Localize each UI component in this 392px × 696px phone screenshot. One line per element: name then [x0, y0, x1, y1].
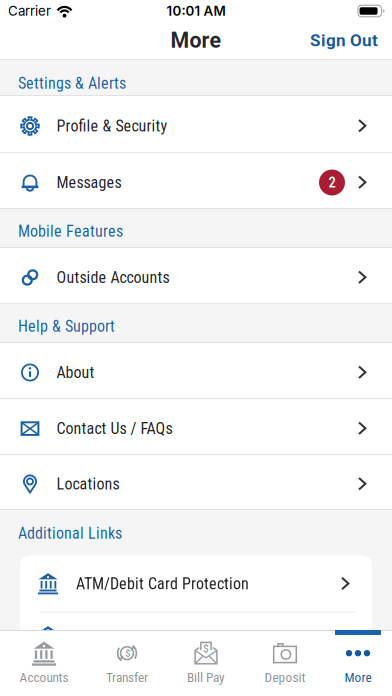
staticText: $	[125, 648, 130, 659]
staticText: Card Controls	[76, 631, 164, 650]
button[interactable]: More	[324, 630, 392, 692]
staticText: ATM/Debit Card Protection	[76, 574, 249, 593]
staticText: Mobile Features	[18, 222, 123, 241]
staticText: Transfer	[106, 670, 148, 685]
button[interactable]: Accounts	[0, 630, 88, 692]
staticText: $	[203, 643, 209, 655]
staticText: About	[56, 363, 94, 382]
button[interactable]: Deposit	[246, 630, 324, 692]
button[interactable]: $	[166, 630, 246, 692]
staticText: Messages	[56, 173, 121, 192]
staticText: Additional Links	[18, 524, 122, 543]
button[interactable]: $	[88, 630, 166, 692]
staticText: Settings & Alerts	[18, 74, 126, 93]
staticText: Accounts	[19, 670, 68, 685]
staticText: 10:01 AM	[166, 3, 225, 19]
staticText: Bill Pay	[187, 670, 225, 685]
button[interactable]: Outside Accounts	[0, 248, 392, 303]
button[interactable]: Sign Out	[310, 30, 392, 50]
button[interactable]: Locations	[0, 455, 392, 509]
staticText: Profile & Security	[56, 117, 167, 135]
button[interactable]: Messages	[0, 153, 392, 208]
staticText: Locations	[56, 475, 119, 493]
staticText: More	[344, 670, 371, 685]
staticText: Carrier	[8, 3, 51, 19]
button[interactable]: Profile & Security	[0, 96, 392, 152]
staticText: More	[170, 28, 221, 53]
button[interactable]: ATM/Debit Card Protection	[20, 556, 372, 612]
button[interactable]: Contact Us / FAQs	[0, 399, 392, 454]
staticText: 2	[328, 174, 335, 191]
button[interactable]: About	[0, 343, 392, 398]
staticText: Help & Support	[18, 317, 115, 336]
staticText: Deposit	[264, 670, 305, 685]
button[interactable]: Card Controls	[20, 613, 372, 669]
staticText: Outside Accounts	[56, 268, 169, 287]
staticText: Sign Out	[310, 30, 378, 50]
staticText: Contact Us / FAQs	[56, 419, 172, 438]
